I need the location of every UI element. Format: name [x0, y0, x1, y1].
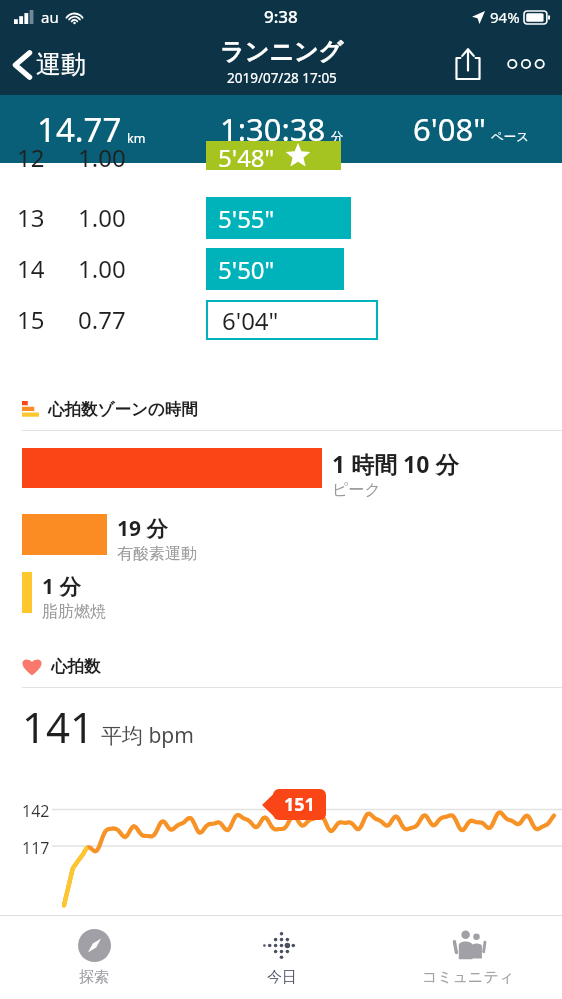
- staticText: 5'48": [218, 141, 275, 170]
- staticText: ランニング: [220, 37, 343, 67]
- staticText: コミュニティ: [422, 968, 515, 987]
- button[interactable]: 1 分: [0, 572, 562, 622]
- staticText: 今日: [267, 968, 297, 987]
- staticText: 12: [17, 141, 45, 170]
- staticText: 6'04": [222, 304, 279, 337]
- staticText: 1 時間 10 分: [332, 448, 459, 479]
- button[interactable]: 1 時間 10 分: [0, 448, 562, 500]
- button[interactable]: 14: [0, 243, 562, 294]
- button[interactable]: Share: [444, 40, 492, 88]
- button[interactable]: 12: [0, 141, 562, 170]
- staticText: 心拍数ゾーンの時間: [48, 399, 198, 420]
- staticText: 平均 bpm: [101, 721, 194, 750]
- staticText: au: [41, 7, 59, 27]
- staticText: 6'08": [413, 108, 486, 150]
- staticText: 15: [17, 303, 45, 336]
- staticText: 1 分: [42, 572, 81, 601]
- staticText: 117: [22, 837, 50, 859]
- button[interactable]: 今日: [188, 923, 375, 993]
- staticText: 142: [22, 800, 50, 822]
- staticText: 0.77: [78, 303, 126, 336]
- staticText: 5'50": [218, 253, 275, 286]
- staticText: ペース: [491, 129, 530, 145]
- staticText: 1.00: [78, 141, 126, 170]
- staticText: 1:30:38: [220, 108, 326, 150]
- staticText: 94%: [490, 7, 520, 27]
- button[interactable]: 13: [0, 192, 562, 243]
- staticText: 1.00: [78, 252, 126, 285]
- staticText: 9:38: [264, 5, 298, 28]
- staticText: 2019/07/28 17:05: [227, 69, 337, 87]
- staticText: 19 分: [117, 514, 168, 543]
- staticText: 運動: [36, 49, 86, 80]
- staticText: 14: [17, 252, 45, 285]
- button[interactable]: More options: [500, 38, 552, 90]
- staticText: 141: [22, 698, 95, 755]
- staticText: 5'55": [218, 202, 275, 235]
- staticText: 151: [284, 792, 315, 817]
- staticText: ピーク: [332, 480, 381, 500]
- staticText: 13: [17, 201, 45, 234]
- staticText: 有酸素運動: [117, 544, 197, 564]
- staticText: 脂肪燃焼: [42, 602, 106, 622]
- staticText: 分: [331, 129, 344, 145]
- button[interactable]: 15: [0, 294, 562, 345]
- staticText: 1.00: [78, 201, 126, 234]
- staticText: km: [127, 130, 146, 147]
- button[interactable]: 19 分: [0, 514, 562, 564]
- button[interactable]: 探索: [0, 923, 188, 993]
- button[interactable]: コミュニティ: [375, 922, 562, 993]
- staticText: 探索: [79, 968, 109, 987]
- button[interactable]: 運動: [8, 43, 92, 86]
- staticText: 14.77: [37, 107, 122, 152]
- staticText: 心拍数: [51, 656, 101, 677]
